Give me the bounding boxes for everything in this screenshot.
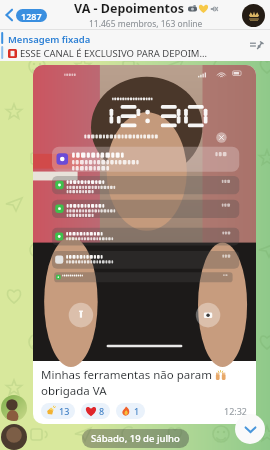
staticText: 12:32 bbox=[224, 405, 248, 417]
staticText: Sábado, 19 de julho bbox=[91, 432, 180, 445]
button[interactable]: Channel avatar bbox=[242, 4, 265, 27]
button[interactable]: 13 bbox=[41, 403, 75, 419]
staticText: Minhas ferramentas não param bbox=[41, 367, 215, 383]
button[interactable]: Sender avatar bbox=[1, 395, 27, 421]
staticText: obrigada VA bbox=[41, 383, 107, 399]
button[interactable]: Minhas ferramentas não param bbox=[33, 65, 256, 424]
button[interactable]: Back, 1287 unread bbox=[3, 5, 49, 25]
button[interactable]: VA - Depoimentos bbox=[49, 0, 242, 30]
button[interactable]: Mensagem fixada bbox=[0, 30, 270, 61]
staticText: 1 bbox=[134, 405, 140, 417]
button[interactable]: Scroll to bottom bbox=[235, 414, 265, 444]
staticText: ESSE CANAL É EXCLUSIVO PARA DEPOIM… bbox=[20, 47, 207, 60]
staticText: Mensagem fixada bbox=[8, 33, 91, 46]
staticText: 11.465 membros, 163 online bbox=[89, 18, 203, 30]
button[interactable]: Sábado, 19 de julho bbox=[82, 429, 189, 448]
button[interactable]: 1 bbox=[116, 403, 145, 419]
staticText: 1287 bbox=[21, 10, 42, 22]
button[interactable]: 8 bbox=[81, 403, 110, 419]
staticText: VA - Depoimentos bbox=[74, 0, 185, 17]
button[interactable]: Pinned messages bbox=[250, 39, 264, 53]
staticText: 13 bbox=[59, 405, 70, 417]
staticText: 8 bbox=[99, 405, 105, 417]
button[interactable]: Sender avatar bbox=[1, 424, 27, 450]
